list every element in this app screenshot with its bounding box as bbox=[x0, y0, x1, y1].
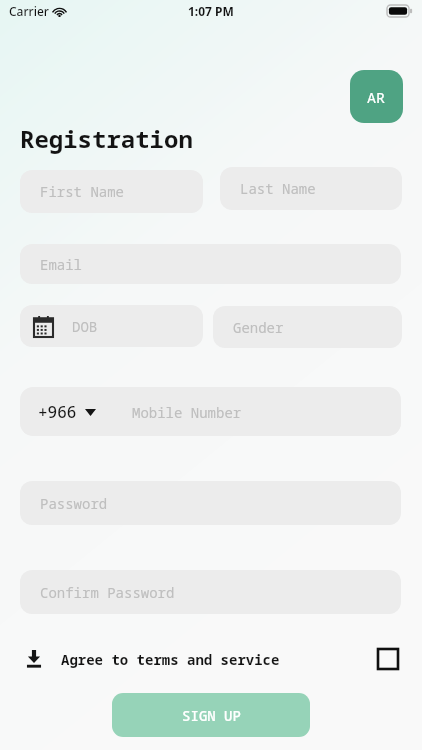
staticText: +966 bbox=[38, 401, 77, 423]
staticText: Last Name bbox=[240, 179, 316, 198]
staticText: DOB bbox=[72, 317, 98, 336]
staticText: Mobile Number bbox=[132, 403, 242, 422]
staticText: Email bbox=[40, 255, 82, 274]
staticText: Registration bbox=[20, 122, 193, 155]
button[interactable]: Email bbox=[20, 244, 401, 284]
staticText: Gender bbox=[233, 318, 284, 337]
button[interactable]: Gender bbox=[213, 306, 402, 348]
button[interactable]: Agree to terms checkbox bbox=[375, 646, 401, 672]
staticText: AR bbox=[367, 87, 386, 107]
staticText: First Name bbox=[40, 182, 124, 201]
staticText: SIGN UP bbox=[182, 706, 241, 725]
button[interactable]: Last Name bbox=[220, 167, 402, 210]
staticText: Confirm Password bbox=[40, 583, 175, 602]
button[interactable]: Download terms and service bbox=[20, 645, 48, 673]
button[interactable]: Switch language to Arabic bbox=[350, 70, 403, 123]
staticText: Carrier bbox=[9, 3, 49, 19]
button[interactable]: SIGN UP bbox=[112, 693, 310, 737]
staticText: 1:07 PM bbox=[188, 3, 234, 19]
button[interactable]: Agree to terms and service bbox=[61, 650, 280, 669]
staticText: Agree to terms and service bbox=[61, 650, 280, 669]
button[interactable]: +966 bbox=[38, 401, 96, 423]
button[interactable]: First Name bbox=[20, 170, 203, 213]
button[interactable]: DOB bbox=[20, 305, 203, 347]
button[interactable]: Password bbox=[20, 481, 401, 525]
button[interactable]: Mobile Number bbox=[132, 392, 392, 432]
button[interactable]: Confirm Password bbox=[20, 570, 401, 614]
staticText: Password bbox=[40, 494, 108, 513]
